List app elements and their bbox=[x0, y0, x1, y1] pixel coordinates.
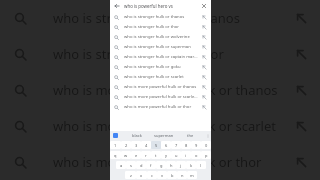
staticText: x bbox=[140, 173, 143, 178]
staticText: who is more powerful hulk or scarlet wit… bbox=[124, 94, 199, 100]
button[interactable]: z bbox=[125, 171, 136, 179]
staticText: h bbox=[170, 163, 173, 168]
staticText: 5 bbox=[155, 143, 158, 148]
button[interactable]: superman bbox=[150, 131, 177, 140]
button[interactable]: 9 bbox=[191, 141, 201, 149]
button[interactable]: More options bbox=[204, 131, 211, 140]
button[interactable]: who is more powerful hulk or thanos bbox=[110, 82, 211, 92]
staticText: 7 bbox=[175, 143, 178, 148]
staticText: who is stronger hulk or thanos bbox=[53, 9, 240, 27]
button[interactable]: who is stronger hulk or thanos bbox=[110, 12, 211, 22]
button[interactable]: 4 bbox=[141, 141, 151, 149]
button[interactable]: x bbox=[136, 171, 147, 179]
button[interactable]: 1 bbox=[110, 141, 121, 149]
button[interactable]: o bbox=[191, 151, 201, 159]
button[interactable]: q bbox=[110, 151, 121, 159]
staticText: f bbox=[150, 163, 152, 168]
staticText: who is more powerful hulk or thor bbox=[53, 153, 262, 171]
button[interactable]: black bbox=[124, 131, 150, 140]
staticText: who is stronger hulk or wolverine bbox=[124, 34, 199, 40]
button[interactable]: u bbox=[171, 151, 181, 159]
staticText: superman bbox=[154, 133, 174, 138]
button[interactable]: h bbox=[166, 161, 176, 169]
staticText: 8 bbox=[185, 143, 188, 148]
button[interactable]: who is stronger hulk or thor bbox=[110, 22, 211, 32]
staticText: who is more powerful hulk or thanos bbox=[124, 84, 199, 90]
staticText: who is more powerful hulk or thor bbox=[124, 104, 199, 110]
staticText: who is more powerful hulk or scarlet wit… bbox=[53, 117, 295, 135]
staticText: s bbox=[130, 163, 132, 168]
staticText: who is stronger hulk or goku bbox=[124, 64, 199, 70]
staticText: g bbox=[160, 163, 163, 168]
button[interactable]: r bbox=[141, 151, 151, 159]
staticText: e bbox=[135, 153, 138, 158]
button[interactable]: p bbox=[201, 151, 211, 159]
staticText: r bbox=[145, 153, 147, 158]
button[interactable]: who is more powerful hulk or thor bbox=[110, 102, 211, 112]
button[interactable]: m bbox=[187, 171, 197, 179]
button[interactable]: d bbox=[136, 161, 146, 169]
staticText: l bbox=[200, 163, 202, 168]
staticText: 0 bbox=[205, 143, 208, 148]
button[interactable]: a bbox=[116, 161, 126, 169]
staticText: n bbox=[181, 173, 184, 178]
button[interactable]: Gboard menu bbox=[113, 133, 118, 138]
staticText: 3 bbox=[135, 143, 138, 148]
button[interactable]: c bbox=[147, 171, 157, 179]
button[interactable]: who is stronger hulk or wolverine bbox=[110, 32, 211, 42]
staticText: who is stronger hulk or thor bbox=[124, 24, 199, 30]
staticText: c bbox=[151, 173, 153, 178]
staticText: who is more powerful hulk or thanos bbox=[53, 81, 278, 99]
button[interactable]: 3 bbox=[131, 141, 141, 149]
button[interactable]: n bbox=[177, 171, 187, 179]
staticText: d bbox=[140, 163, 143, 168]
staticText: 1 bbox=[114, 143, 117, 148]
button[interactable]: who is more powerful hulk or scarlet wit… bbox=[110, 92, 211, 102]
button[interactable]: Clear query bbox=[201, 3, 207, 9]
staticText: 2 bbox=[125, 143, 128, 148]
staticText: w bbox=[124, 153, 128, 158]
button[interactable]: f bbox=[146, 161, 156, 169]
staticText: who is stronger hulk or thor bbox=[53, 45, 224, 63]
staticText: q bbox=[114, 153, 117, 158]
staticText: t bbox=[155, 153, 157, 158]
button[interactable]: the bbox=[177, 131, 204, 140]
button[interactable]: who is stronger hulk or goku bbox=[110, 62, 211, 72]
button[interactable]: 5 bbox=[151, 141, 161, 149]
button[interactable]: who is stronger hulk or superman bbox=[110, 42, 211, 52]
button[interactable]: y bbox=[161, 151, 171, 159]
button[interactable]: 7 bbox=[171, 141, 181, 149]
button[interactable]: l bbox=[196, 161, 206, 169]
staticText: v bbox=[161, 173, 164, 178]
button[interactable]: Back bbox=[114, 3, 120, 9]
staticText: z bbox=[130, 173, 132, 178]
button[interactable]: 0 bbox=[201, 141, 211, 149]
button[interactable]: 2 bbox=[121, 141, 131, 149]
button[interactable]: s bbox=[126, 161, 136, 169]
staticText: 6 bbox=[165, 143, 168, 148]
button[interactable]: i bbox=[181, 151, 191, 159]
staticText: who is stronger hulk or superman bbox=[124, 44, 199, 50]
staticText: k bbox=[190, 163, 193, 168]
staticText: b bbox=[171, 173, 174, 178]
staticText: 4 bbox=[145, 143, 148, 148]
button[interactable]: e bbox=[131, 151, 141, 159]
staticText: who is stronger hulk or scarlet bbox=[124, 74, 199, 80]
staticText: j bbox=[180, 163, 182, 168]
button[interactable]: k bbox=[186, 161, 196, 169]
button[interactable]: who is stronger hulk or captain marvel bbox=[110, 52, 211, 62]
staticText: u bbox=[175, 153, 178, 158]
button[interactable]: w bbox=[121, 151, 131, 159]
staticText: m bbox=[190, 173, 194, 178]
staticText: 9 bbox=[195, 143, 198, 148]
button[interactable]: b bbox=[167, 171, 177, 179]
button[interactable]: g bbox=[156, 161, 166, 169]
button[interactable]: who is stronger hulk or scarlet bbox=[110, 72, 211, 82]
button[interactable]: 6 bbox=[161, 141, 171, 149]
staticText: y bbox=[165, 153, 168, 158]
staticText: black bbox=[132, 133, 142, 138]
button[interactable]: 8 bbox=[181, 141, 191, 149]
button[interactable]: j bbox=[176, 161, 186, 169]
button[interactable]: v bbox=[157, 171, 167, 179]
button[interactable]: t bbox=[151, 151, 161, 159]
